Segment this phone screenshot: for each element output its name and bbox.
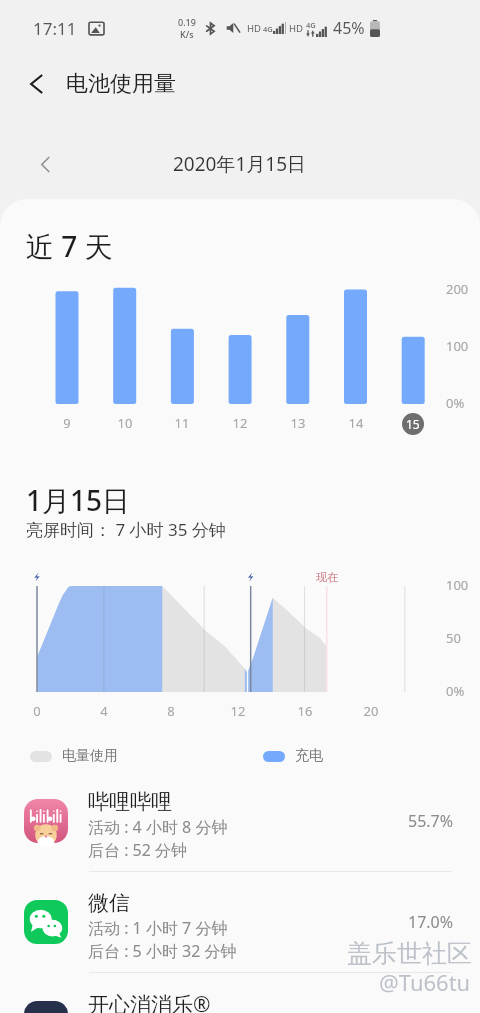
staticText: 15 <box>406 416 420 432</box>
staticText: HD <box>247 22 261 35</box>
staticText: @Tu66tu <box>379 967 471 997</box>
staticText: 电量使用 <box>62 747 118 765</box>
staticText: 盖乐世社区 <box>347 938 472 969</box>
staticText: 亮屏时间： 7 小时 35 分钟 <box>26 518 226 541</box>
staticText: 近 7 天 <box>26 227 113 265</box>
staticText: 45% <box>333 17 365 39</box>
staticText: 50 <box>446 629 461 647</box>
button[interactable]: 微信 <box>0 872 480 972</box>
button[interactable]: 哔哩哔哩 <box>0 771 480 871</box>
staticText: 9 <box>55 414 79 432</box>
staticText: 4 <box>92 702 116 720</box>
staticText: 电池使用量 <box>66 70 176 98</box>
staticText: 后台 : 5 小时 32 分钟 <box>88 940 237 962</box>
staticText: 0.19 <box>178 16 196 28</box>
button[interactable]: Back <box>14 62 58 106</box>
staticText: 0% <box>446 394 465 412</box>
staticText: 现在 <box>311 570 343 584</box>
staticText: 0 <box>25 702 49 720</box>
staticText: 0% <box>446 682 465 700</box>
staticText: 2020年1月15日 <box>173 151 307 177</box>
staticText: 100 <box>446 337 469 355</box>
staticText: 17.0% <box>408 911 454 933</box>
staticText: 14 <box>344 414 368 432</box>
staticText: 充电 <box>295 747 323 765</box>
staticText: 12 <box>226 702 250 720</box>
button[interactable]: 开心消消乐® <box>0 973 480 1013</box>
staticText: HD <box>289 22 303 35</box>
staticText: 开心消消乐® <box>88 990 211 1013</box>
button[interactable]: Previous day <box>26 139 64 177</box>
staticText: 13 <box>286 414 310 432</box>
staticText: 16 <box>293 702 317 720</box>
staticText: 8 <box>159 702 183 720</box>
staticText: 17:11 <box>33 17 77 40</box>
staticText: 1月15日 <box>26 481 131 519</box>
staticText: K/s <box>180 28 194 40</box>
staticText: 活动 : 1 小时 7 分钟 <box>88 917 228 939</box>
staticText: 20 <box>359 702 383 720</box>
staticText: 4G <box>306 20 316 30</box>
staticText: 200 <box>446 280 469 298</box>
staticText: 100 <box>446 576 469 594</box>
staticText: 4G <box>263 24 273 34</box>
staticText: 12 <box>228 414 252 432</box>
staticText: 10 <box>113 414 137 432</box>
staticText: 活动 : 4 小时 8 分钟 <box>88 816 228 838</box>
staticText: 11 <box>170 414 194 432</box>
staticText: 后台 : 52 分钟 <box>88 839 188 861</box>
staticText: 55.7% <box>408 810 454 832</box>
staticText: 微信 <box>88 890 130 916</box>
staticText: 哔哩哔哩 <box>88 789 172 815</box>
